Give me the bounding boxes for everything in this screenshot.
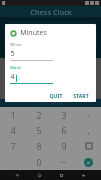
button[interactable]: 7: [0, 138, 26, 154]
staticText: 5: [10, 49, 15, 59]
staticText: START: [73, 92, 89, 99]
staticText: 4: [10, 72, 15, 82]
staticText: QUIT: [49, 92, 63, 99]
button[interactable]: 2: [26, 107, 51, 122]
button[interactable]: 3: [51, 107, 76, 122]
button[interactable]: Black: [10, 65, 53, 84]
button[interactable]: Delete: [76, 138, 101, 154]
button[interactable]: START: [70, 91, 92, 100]
staticText: 0: [36, 156, 42, 168]
button[interactable]: [51, 154, 76, 170]
staticText: 00:00: [26, 25, 75, 51]
staticText: Minutes: [20, 28, 47, 38]
staticText: 1: [10, 109, 16, 121]
staticText: 2: [36, 109, 42, 121]
button[interactable]: 4: [0, 122, 26, 138]
button[interactable]: 0: [26, 154, 51, 170]
staticText: Chess Clock: [30, 7, 72, 17]
button[interactable]: 1: [0, 107, 26, 122]
button[interactable]: Keyboard: [79, 171, 88, 180]
staticText: White: [10, 42, 22, 48]
button[interactable]: Recents: [57, 171, 66, 180]
staticText: XXX XXXX: [39, 100, 63, 107]
button[interactable]: White: [10, 42, 53, 61]
staticText: 8: [36, 140, 42, 152]
staticText: 3: [61, 109, 67, 121]
button[interactable]: Back: [13, 171, 22, 180]
other: Done: [84, 158, 93, 167]
staticText: 7: [10, 140, 16, 152]
staticText: Black: [10, 65, 21, 71]
button[interactable]: 8: [26, 138, 51, 154]
button[interactable]: 00:00: [4, 21, 97, 55]
staticText: 9: [61, 140, 67, 152]
button[interactable]: 5: [26, 122, 51, 138]
button[interactable]: Home: [35, 171, 44, 180]
staticText: 6: [61, 124, 67, 136]
button[interactable]: 6: [51, 122, 76, 138]
staticText: 5: [36, 124, 42, 136]
staticText: .: [12, 156, 15, 168]
staticText: ,: [87, 124, 90, 136]
button[interactable]: Done: [76, 154, 101, 170]
staticText: -: [87, 109, 90, 121]
button[interactable]: QUIT: [46, 91, 66, 100]
other: Delete: [86, 143, 92, 149]
button[interactable]: 9: [51, 138, 76, 154]
staticText: 4: [10, 124, 16, 136]
staticText: 00:00: [26, 66, 75, 92]
